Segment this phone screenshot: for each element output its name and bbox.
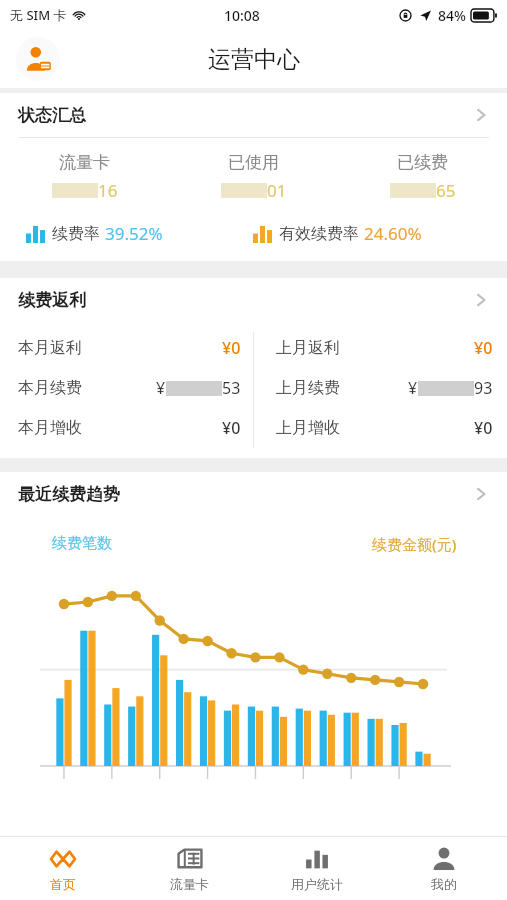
staticText: ¥0 bbox=[474, 417, 493, 439]
staticText: 本月增收 bbox=[18, 418, 82, 438]
staticText: ¥ bbox=[156, 377, 166, 399]
button[interactable]: 流量卡 bbox=[126, 837, 253, 900]
staticText: 上月返利 bbox=[276, 338, 340, 358]
staticText: 用户统计 bbox=[291, 876, 343, 892]
staticText: 续费率 bbox=[52, 224, 100, 244]
staticText: 84% bbox=[438, 6, 466, 25]
staticText: 状态汇总 bbox=[18, 105, 86, 126]
staticText: 本月续费 bbox=[18, 378, 82, 398]
staticText: 53 bbox=[222, 377, 241, 399]
staticText: ¥0 bbox=[222, 337, 241, 359]
staticText: 续费返利 bbox=[18, 290, 86, 311]
staticText: 已使用 bbox=[228, 152, 279, 173]
staticText: 首页 bbox=[50, 876, 76, 892]
button[interactable]: 最近续费趋势 bbox=[0, 472, 507, 516]
staticText: 01 bbox=[267, 179, 287, 202]
staticText: 我的 bbox=[431, 876, 457, 892]
staticText: 24.60% bbox=[364, 222, 422, 245]
staticText: 流量卡 bbox=[170, 876, 209, 892]
staticText: 有效续费率 bbox=[279, 224, 359, 244]
staticText: 运营中心 bbox=[208, 45, 300, 74]
staticText: 65 bbox=[436, 179, 456, 202]
staticText: 93 bbox=[474, 377, 493, 399]
button[interactable]: 我的 bbox=[380, 837, 507, 900]
staticText: 续费笔数 bbox=[52, 534, 112, 553]
button[interactable]: 状态汇总 bbox=[0, 93, 507, 137]
button[interactable]: 首页 bbox=[0, 837, 126, 900]
button[interactable]: Switch account bbox=[16, 37, 60, 81]
staticText: ¥0 bbox=[222, 417, 241, 439]
staticText: 39.52% bbox=[105, 222, 163, 245]
staticText: 续费金额(元) bbox=[372, 534, 457, 554]
staticText: 已续费 bbox=[397, 152, 448, 173]
staticText: 流量卡 bbox=[59, 152, 110, 173]
staticText: 16 bbox=[98, 179, 118, 202]
staticText: 上月续费 bbox=[276, 378, 340, 398]
staticText: 10:08 bbox=[224, 6, 260, 25]
staticText: 上月增收 bbox=[276, 418, 340, 438]
button[interactable]: 续费返利 bbox=[0, 278, 507, 322]
staticText: ¥0 bbox=[474, 337, 493, 359]
button[interactable]: 用户统计 bbox=[253, 837, 380, 900]
staticText: 最近续费趋势 bbox=[18, 484, 120, 505]
staticText: ¥ bbox=[408, 377, 418, 399]
staticText: 本月返利 bbox=[18, 338, 82, 358]
staticText: 无 SIM 卡 bbox=[10, 6, 67, 24]
